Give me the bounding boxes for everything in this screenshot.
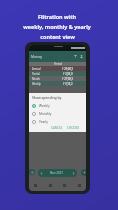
button[interactable]: Filter <box>73 54 78 59</box>
staticText: content view <box>40 33 75 40</box>
staticText: weekly, monthly & yearly <box>23 23 91 30</box>
staticText: Yearly <box>39 120 48 124</box>
staticText: Monthly <box>39 112 52 116</box>
staticText: Period <box>54 62 62 66</box>
staticText: Weekly <box>39 104 50 108</box>
staticText: Filtration with <box>38 13 76 20</box>
button[interactable]: Account <box>79 54 84 59</box>
staticText: Weekly <box>32 82 41 86</box>
staticText: Annual <box>32 67 41 71</box>
button[interactable]: Monthly <box>29 110 86 118</box>
button[interactable]: Add <box>29 169 35 175</box>
staticText: Partial <box>32 72 40 76</box>
staticText: Money <box>31 54 43 59</box>
button[interactable]: CANCEL <box>49 126 65 130</box>
staticText: ₹ 3,58,0 <box>63 72 73 76</box>
button[interactable]: Weekly <box>29 102 86 110</box>
staticText: ₹ 27,08,3 <box>62 77 73 81</box>
button[interactable]: Menu <box>81 169 86 176</box>
staticText: Show spending by <box>32 95 62 100</box>
staticText: Month <box>32 77 41 81</box>
staticText: ₹ 29,68,3 <box>62 67 73 71</box>
button[interactable]: Partial <box>29 71 86 76</box>
button[interactable]: Weekly <box>29 81 86 86</box>
button[interactable]: CHOOSE <box>65 126 82 130</box>
staticText: Nov 2021 <box>50 171 64 175</box>
button[interactable]: Annual <box>29 66 86 71</box>
button[interactable]: Nov 2021 <box>38 169 77 177</box>
button[interactable]: Yearly <box>29 118 86 126</box>
button[interactable]: Month <box>29 76 86 81</box>
staticText: ₹ 9,18,2 <box>63 82 73 86</box>
